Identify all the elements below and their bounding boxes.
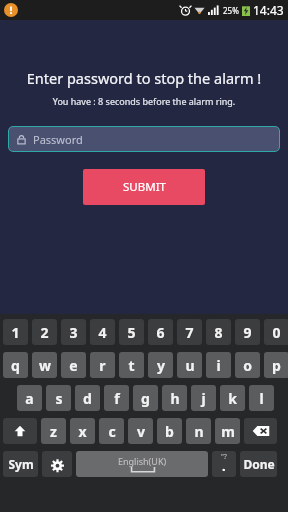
staticText: 3 bbox=[69, 323, 78, 342]
staticText: Enter password to stop the alarm ! bbox=[0, 68, 288, 88]
button[interactable]: 3 bbox=[61, 319, 86, 345]
staticText: SUBMIT bbox=[123, 179, 166, 195]
staticText: s bbox=[55, 389, 63, 408]
staticText: z bbox=[50, 422, 57, 441]
staticText: r bbox=[99, 356, 106, 375]
staticText: 14:43 bbox=[253, 2, 284, 18]
staticText: 6 bbox=[156, 323, 165, 342]
staticText: v bbox=[137, 422, 145, 441]
staticText: 7 bbox=[185, 323, 194, 342]
button[interactable]: SUBMIT bbox=[83, 169, 205, 205]
button[interactable]: w bbox=[32, 352, 57, 378]
button[interactable]: 9 bbox=[235, 319, 260, 345]
staticText: p bbox=[272, 356, 281, 375]
staticText: k bbox=[228, 389, 237, 408]
button[interactable]: Sym bbox=[3, 451, 38, 477]
button[interactable]: Keyboard settings bbox=[42, 451, 72, 477]
button[interactable]: d bbox=[75, 385, 100, 411]
staticText: n bbox=[194, 422, 204, 441]
staticText: u bbox=[185, 356, 195, 375]
button[interactable]: 8 bbox=[206, 319, 231, 345]
staticText: 9 bbox=[243, 323, 252, 342]
staticText: "? bbox=[221, 452, 227, 462]
staticText: 8 bbox=[214, 323, 223, 342]
staticText: . bbox=[222, 457, 226, 475]
button[interactable]: x bbox=[70, 418, 95, 444]
button[interactable]: Space bbox=[76, 451, 208, 477]
button[interactable]: g bbox=[133, 385, 158, 411]
button[interactable]: k bbox=[220, 385, 245, 411]
button[interactable]: Backspace bbox=[244, 418, 277, 444]
button[interactable]: 5 bbox=[119, 319, 144, 345]
button[interactable]: Done bbox=[240, 451, 277, 477]
button[interactable]: n bbox=[186, 418, 211, 444]
staticText: x bbox=[78, 422, 87, 441]
staticText: q bbox=[11, 356, 20, 375]
button[interactable]: q bbox=[3, 352, 28, 378]
staticText: 1 bbox=[11, 323, 20, 342]
button[interactable]: 1 bbox=[3, 319, 28, 345]
button[interactable]: i bbox=[206, 352, 231, 378]
button[interactable]: h bbox=[162, 385, 187, 411]
staticText: Sym bbox=[8, 456, 34, 472]
staticText: English(UK) bbox=[118, 455, 167, 467]
button[interactable]: 4 bbox=[90, 319, 115, 345]
staticText: f bbox=[114, 389, 120, 408]
button[interactable]: c bbox=[99, 418, 124, 444]
button[interactable]: 2 bbox=[32, 319, 57, 345]
staticText: 0 bbox=[272, 323, 281, 342]
staticText: e bbox=[69, 356, 78, 375]
staticText: h bbox=[170, 389, 180, 408]
button[interactable]: 7 bbox=[177, 319, 202, 345]
button[interactable]: u bbox=[177, 352, 202, 378]
staticText: 2 bbox=[40, 323, 49, 342]
button[interactable]: s bbox=[46, 385, 71, 411]
button[interactable]: 6 bbox=[148, 319, 173, 345]
button[interactable]: j bbox=[191, 385, 216, 411]
staticText: c bbox=[108, 422, 116, 441]
button[interactable]: e bbox=[61, 352, 86, 378]
button[interactable]: z bbox=[41, 418, 66, 444]
staticText: Password bbox=[33, 132, 83, 147]
button[interactable]: m bbox=[215, 418, 240, 444]
staticText: w bbox=[39, 356, 51, 375]
button[interactable]: y bbox=[148, 352, 173, 378]
staticText: You have : 8 seconds before the alarm ri… bbox=[0, 95, 288, 107]
staticText: 5 bbox=[127, 323, 136, 342]
button[interactable]: Password bbox=[8, 126, 280, 152]
staticText: i bbox=[216, 356, 221, 375]
staticText: j bbox=[201, 389, 206, 408]
button[interactable]: a bbox=[17, 385, 42, 411]
button[interactable]: Shift bbox=[3, 418, 37, 444]
button[interactable]: f bbox=[104, 385, 129, 411]
staticText: Done bbox=[243, 456, 275, 472]
staticText: t bbox=[128, 356, 135, 375]
staticText: a bbox=[25, 389, 34, 408]
staticText: l bbox=[259, 389, 264, 408]
staticText: 4 bbox=[98, 323, 107, 342]
staticText: y bbox=[157, 356, 165, 375]
button[interactable]: v bbox=[128, 418, 153, 444]
button[interactable]: Period bbox=[212, 451, 236, 477]
staticText: 25% bbox=[223, 5, 239, 16]
button[interactable]: 0 bbox=[264, 319, 288, 345]
staticText: d bbox=[83, 389, 92, 408]
staticText: o bbox=[243, 356, 252, 375]
button[interactable]: o bbox=[235, 352, 260, 378]
button[interactable]: p bbox=[264, 352, 288, 378]
staticText: g bbox=[141, 389, 150, 408]
button[interactable]: b bbox=[157, 418, 182, 444]
staticText: m bbox=[221, 422, 235, 441]
button[interactable]: t bbox=[119, 352, 144, 378]
staticText: b bbox=[165, 422, 174, 441]
button[interactable]: r bbox=[90, 352, 115, 378]
button[interactable]: l bbox=[249, 385, 274, 411]
